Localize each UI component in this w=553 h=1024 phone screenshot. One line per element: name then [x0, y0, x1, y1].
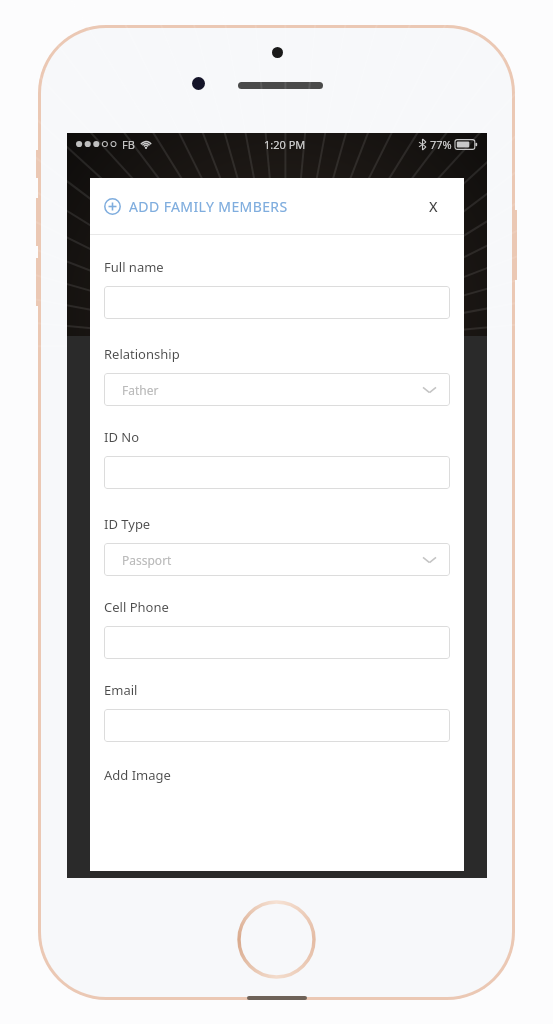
staticText: Add Image — [104, 766, 171, 784]
button[interactable] — [104, 709, 450, 742]
button[interactable]: Close — [416, 189, 450, 223]
staticText: Relationship — [104, 345, 180, 363]
staticText: X — [429, 197, 438, 216]
button[interactable]: Home — [237, 900, 316, 979]
button[interactable]: Passport — [104, 543, 450, 576]
staticText: Cell Phone — [104, 598, 169, 616]
staticText: ID Type — [104, 515, 151, 533]
staticText: Father — [122, 382, 159, 398]
button[interactable] — [104, 626, 450, 659]
staticText: 1:20 PM — [264, 137, 306, 152]
staticText: Passport — [122, 552, 172, 568]
staticText: ADD FAMILY MEMBERS — [129, 197, 288, 216]
staticText: Email — [104, 681, 138, 699]
button[interactable] — [104, 286, 450, 319]
staticText: ID No — [104, 428, 140, 446]
button[interactable]: Father — [104, 373, 450, 406]
staticText: FB — [122, 137, 135, 152]
button[interactable]: ADD FAMILY MEMBERS — [104, 191, 288, 222]
staticText: Full name — [104, 258, 164, 276]
staticText: 77% — [430, 137, 452, 152]
button[interactable] — [104, 456, 450, 489]
